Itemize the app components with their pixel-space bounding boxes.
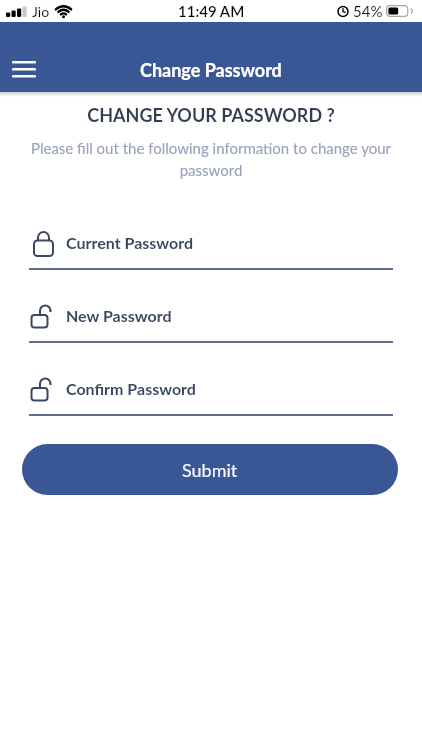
staticText: CHANGE YOUR PASSWORD ? <box>0 104 422 126</box>
staticText: New Password <box>66 306 172 325</box>
staticText: 54% <box>353 2 383 20</box>
staticText: Change Password <box>140 59 282 81</box>
staticText: Confirm Password <box>66 379 196 398</box>
staticText: Please fill out the following informatio… <box>0 139 422 179</box>
button[interactable] <box>8 55 40 83</box>
button[interactable]: Confirm Password <box>0 371 422 416</box>
staticText: Jio <box>32 3 50 20</box>
staticText: Current Password <box>66 233 194 252</box>
button[interactable]: New Password <box>0 298 422 343</box>
button[interactable]: Current Password <box>0 225 422 270</box>
staticText: 11:49 AM <box>178 2 245 20</box>
staticText: Submit <box>182 459 238 481</box>
button[interactable]: Submit <box>22 444 398 495</box>
